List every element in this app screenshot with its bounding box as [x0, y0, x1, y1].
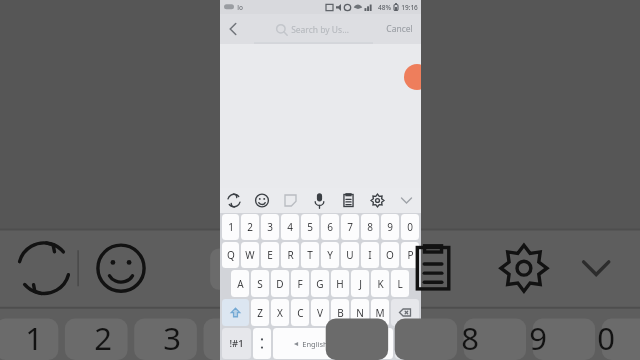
- button[interactable]: Delete: [391, 299, 419, 326]
- button[interactable]: 0: [401, 214, 419, 240]
- staticText: P: [407, 248, 414, 262]
- staticText: O: [386, 248, 394, 262]
- button[interactable]: Q: [222, 242, 239, 268]
- button[interactable]: B: [331, 299, 349, 326]
- button[interactable]: Cancel: [377, 14, 421, 44]
- button[interactable]: Compose: [404, 64, 430, 90]
- button[interactable]: W: [241, 242, 259, 268]
- staticText: 0: [597, 317, 615, 359]
- button[interactable]: K: [371, 270, 389, 297]
- staticText: G: [316, 277, 324, 291]
- button[interactable]: S: [251, 270, 269, 297]
- staticText: 0: [407, 220, 413, 234]
- staticText: S: [257, 277, 263, 291]
- staticText: 5: [307, 220, 313, 234]
- button[interactable]: I: [361, 242, 379, 268]
- button[interactable]: 4: [281, 214, 299, 240]
- staticText: 1: [228, 220, 234, 234]
- button[interactable]: Collapse keyboard: [392, 188, 421, 213]
- button[interactable]: Clipboard: [334, 188, 363, 213]
- staticText: U: [346, 248, 354, 262]
- button[interactable]: O: [381, 242, 399, 268]
- button[interactable]: Voice input: [305, 188, 334, 213]
- button[interactable]: 5: [301, 214, 319, 240]
- button[interactable]: L: [391, 270, 409, 297]
- staticText: W: [245, 248, 255, 262]
- staticText: M: [375, 306, 385, 320]
- button[interactable]: Stickers: [276, 188, 305, 213]
- staticText: B: [337, 306, 344, 320]
- button[interactable]: 1: [222, 214, 239, 240]
- staticText: V: [317, 306, 323, 320]
- button[interactable]: H: [331, 270, 349, 297]
- button[interactable]: J: [351, 270, 369, 297]
- staticText: X: [277, 306, 283, 320]
- button[interactable]: A: [231, 270, 249, 297]
- staticText: J: [359, 277, 362, 291]
- button[interactable]: Search: [395, 328, 419, 359]
- staticText: !#1: [229, 337, 244, 350]
- staticText: R: [287, 248, 294, 262]
- staticText: T: [307, 248, 313, 262]
- button[interactable]: 6: [321, 214, 339, 240]
- button[interactable]: 7: [341, 214, 359, 240]
- staticText: 2: [247, 220, 253, 234]
- staticText: F: [297, 277, 303, 291]
- button[interactable]: Back: [220, 14, 246, 44]
- staticText: English (US): [302, 339, 344, 349]
- button[interactable]: U: [341, 242, 359, 268]
- staticText: N: [356, 306, 364, 320]
- button[interactable]: 9: [381, 214, 399, 240]
- staticText: 9: [387, 220, 393, 234]
- button[interactable]: F: [291, 270, 309, 297]
- staticText: 2: [94, 317, 112, 359]
- button[interactable]: 8: [361, 214, 379, 240]
- button[interactable]: M: [371, 299, 389, 326]
- staticText: Cancel: [386, 23, 413, 35]
- button[interactable]: Z: [251, 299, 269, 326]
- button[interactable]: 2: [241, 214, 259, 240]
- staticText: 8: [461, 317, 479, 359]
- button[interactable]: Emoji: [248, 188, 276, 213]
- button[interactable]: Keyboard settings: [363, 188, 392, 213]
- staticText: A: [237, 277, 244, 291]
- staticText: L: [397, 277, 403, 291]
- staticText: Y: [327, 248, 333, 262]
- staticText: 6: [327, 220, 333, 234]
- staticText: E: [267, 248, 273, 262]
- staticText: 3: [163, 317, 181, 359]
- button[interactable]: .: [375, 328, 393, 359]
- button[interactable]: G: [311, 270, 329, 297]
- staticText: K: [377, 277, 384, 291]
- button[interactable]: English (US): [273, 328, 373, 359]
- button[interactable]: X: [271, 299, 289, 326]
- staticText: 9: [529, 317, 547, 359]
- button[interactable]: N: [351, 299, 369, 326]
- staticText: C: [297, 306, 304, 320]
- button[interactable]: R: [281, 242, 299, 268]
- staticText: 19:16: [401, 3, 418, 12]
- button[interactable]: T: [301, 242, 319, 268]
- staticText: D: [276, 277, 284, 291]
- button[interactable]: Symbols: [253, 328, 271, 359]
- staticText: 1: [25, 317, 43, 359]
- staticText: 8: [367, 220, 373, 234]
- button[interactable]: P: [401, 242, 419, 268]
- staticText: 4: [287, 220, 293, 234]
- button[interactable]: 3: [261, 214, 279, 240]
- button[interactable]: Text mode: [220, 188, 248, 213]
- button[interactable]: C: [291, 299, 309, 326]
- staticText: 3: [267, 220, 273, 234]
- button[interactable]: V: [311, 299, 329, 326]
- staticText: Search by Us…: [291, 24, 349, 36]
- staticText: 7: [347, 220, 353, 234]
- button[interactable]: Shift: [222, 299, 249, 326]
- button[interactable]: D: [271, 270, 289, 297]
- staticText: H: [336, 277, 344, 291]
- button[interactable]: Y: [321, 242, 339, 268]
- button[interactable]: E: [261, 242, 279, 268]
- button[interactable]: !#1: [222, 328, 251, 359]
- staticText: I: [368, 248, 372, 262]
- button[interactable]: Search field: [246, 14, 377, 44]
